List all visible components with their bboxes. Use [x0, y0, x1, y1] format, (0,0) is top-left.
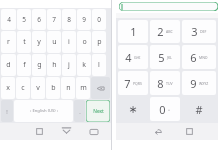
button[interactable]: i	[62, 31, 76, 53]
button[interactable]: t	[17, 31, 31, 53]
button[interactable]: y	[32, 31, 46, 53]
staticText: o	[82, 37, 87, 47]
button[interactable]: 7	[47, 9, 61, 30]
button[interactable]: 0	[150, 97, 180, 121]
staticText: 6	[190, 50, 197, 65]
staticText: 9	[82, 15, 86, 24]
staticText: 0	[97, 15, 101, 24]
button[interactable]: Backspace	[91, 77, 110, 99]
other: Recents	[184, 126, 195, 137]
staticText: r	[7, 37, 10, 47]
staticText: WXYZ	[199, 81, 209, 86]
button[interactable]: r	[1, 31, 16, 53]
staticText: Next	[93, 108, 104, 115]
other: Keyboard	[89, 127, 99, 137]
button[interactable]: 9	[182, 71, 216, 95]
button[interactable]: l	[92, 54, 106, 76]
staticText: #	[195, 102, 203, 117]
staticText: t	[23, 37, 26, 47]
staticText: h	[52, 60, 57, 70]
button[interactable]: n	[61, 77, 75, 99]
button[interactable]: !	[1, 100, 13, 122]
button[interactable]: b	[46, 77, 60, 99]
button[interactable]: 8	[62, 9, 76, 30]
button[interactable]: 6	[32, 9, 46, 30]
button[interactable]: Next	[86, 100, 110, 122]
button[interactable]: g	[32, 54, 46, 76]
button[interactable]: x	[1, 77, 15, 99]
staticText: 4	[7, 15, 11, 24]
button[interactable]: Back	[143, 123, 174, 140]
button[interactable]: 4	[1, 9, 16, 30]
staticText: 2	[157, 24, 164, 39]
staticText: f	[23, 60, 26, 70]
button[interactable]: 7	[118, 71, 148, 95]
button[interactable]: ∗	[118, 97, 148, 121]
staticText: 5	[22, 15, 26, 24]
button[interactable]: Recents	[26, 123, 53, 140]
staticText: n	[66, 83, 71, 93]
button[interactable]: h	[47, 54, 61, 76]
button[interactable]: 0	[92, 9, 106, 30]
staticText: 5	[158, 50, 165, 65]
button[interactable]: #	[182, 97, 216, 121]
button[interactable]: c	[16, 77, 30, 99]
staticText: u	[52, 37, 57, 47]
button[interactable]: 1	[118, 20, 148, 43]
staticText: DEF	[200, 29, 207, 34]
button[interactable]: j	[62, 54, 76, 76]
staticText: 7	[52, 15, 56, 24]
button[interactable]: u	[47, 31, 61, 53]
staticText: m	[80, 83, 87, 93]
staticText: g	[37, 60, 42, 70]
staticText: 8	[157, 76, 164, 91]
button[interactable]: Hide keyboard	[53, 123, 80, 140]
button[interactable]: 8	[150, 71, 180, 95]
staticText: TUV	[166, 81, 173, 86]
button[interactable]: 4	[118, 45, 148, 69]
other: Hide keyboard	[61, 126, 72, 137]
staticText: .	[79, 108, 81, 115]
staticText: +	[168, 107, 171, 112]
staticText: 0	[159, 102, 166, 117]
staticText: GHI	[134, 55, 141, 60]
button[interactable]: ‹ English (US) ›	[14, 100, 73, 122]
staticText: !	[6, 108, 8, 115]
button[interactable]: f	[17, 54, 31, 76]
staticText: 1	[130, 24, 137, 39]
staticText: b	[51, 83, 56, 93]
button[interactable]: 3	[182, 20, 216, 43]
button[interactable]: 6	[182, 45, 216, 69]
staticText: 6	[37, 15, 41, 24]
staticText: k	[82, 60, 86, 70]
staticText: 3	[191, 24, 198, 39]
staticText: j	[68, 60, 70, 70]
button[interactable]: 9	[77, 9, 91, 30]
button[interactable]: o	[77, 31, 91, 53]
button[interactable]: 5	[17, 9, 31, 30]
staticText: JKL	[167, 55, 172, 60]
button[interactable]: v	[31, 77, 45, 99]
button[interactable]	[119, 2, 218, 11]
staticText: d	[6, 60, 11, 70]
button[interactable]: Recents	[174, 123, 205, 140]
button[interactable]: m	[76, 77, 90, 99]
staticText: y	[37, 37, 41, 47]
staticText: MNO	[199, 55, 208, 60]
staticText: ‹ English (US) ›	[30, 108, 58, 114]
button[interactable]: k	[77, 54, 91, 76]
other: Recents	[34, 126, 45, 137]
button[interactable]: p	[92, 31, 106, 53]
staticText: l	[98, 60, 100, 70]
staticText: x	[6, 83, 10, 93]
staticText: PQRS	[133, 81, 142, 86]
button[interactable]: 5	[150, 45, 180, 69]
staticText: ABC	[166, 29, 173, 34]
button[interactable]: 2	[150, 20, 180, 43]
button[interactable]: Keyboard	[80, 123, 107, 140]
other: Back	[153, 126, 164, 137]
staticText: v	[36, 83, 40, 93]
staticText: 8	[67, 15, 71, 24]
button[interactable]: d	[1, 54, 16, 76]
